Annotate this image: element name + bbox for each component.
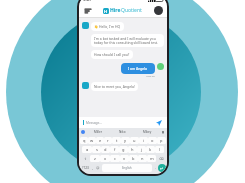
button[interactable]: k — [146, 146, 155, 153]
staticText: I'm a bot tasked and I will evaluate you… — [94, 36, 161, 45]
button[interactable]: b — [129, 155, 138, 162]
staticText: Mikey — [143, 130, 152, 134]
staticText: ↵ — [160, 166, 164, 171]
staticText: H — [104, 9, 108, 14]
staticText: Quotient — [121, 7, 142, 14]
staticText: 👋 Hello, I'm HQ — [94, 24, 121, 29]
staticText: Message... — [86, 121, 102, 125]
staticText: ☺ — [96, 166, 100, 170]
staticText: b — [132, 156, 135, 161]
staticText: u — [133, 138, 136, 143]
button[interactable]: l — [155, 146, 164, 153]
button[interactable]: Google — [81, 130, 85, 134]
button[interactable]: Mikey — [135, 130, 160, 134]
staticText: k — [149, 147, 152, 152]
button[interactable]: z — [90, 155, 100, 162]
staticText: z — [94, 156, 96, 161]
staticText: , — [92, 166, 93, 170]
staticText: How should I call you? — [94, 52, 130, 57]
staticText: s — [96, 147, 98, 152]
button[interactable]: 👋 Hello, I'm HQ — [91, 22, 124, 31]
button[interactable]: j — [137, 146, 146, 153]
button[interactable]: w — [88, 137, 96, 144]
button[interactable]: Niko — [110, 130, 135, 134]
button[interactable]: ☺ — [95, 165, 101, 171]
button[interactable]: t — [112, 137, 121, 144]
staticText: Miller — [94, 130, 102, 134]
staticText: m — [150, 156, 154, 161]
staticText: Hire — [110, 7, 121, 14]
staticText: Niko — [119, 130, 126, 134]
button[interactable]: English — [102, 164, 152, 172]
staticText: w — [90, 138, 94, 143]
staticText: g — [122, 147, 125, 152]
button[interactable]: ⌫ — [156, 155, 166, 162]
button[interactable]: s — [92, 146, 101, 153]
staticText: f — [114, 147, 116, 152]
button[interactable]: p — [157, 137, 166, 144]
button[interactable]: e — [96, 137, 104, 144]
button[interactable]: u — [130, 137, 139, 144]
staticText: . — [155, 166, 156, 170]
staticText: ⌫ — [159, 157, 164, 161]
staticText: ⇧ — [84, 157, 87, 161]
button[interactable]: f — [110, 146, 119, 153]
button[interactable]: I'm a bot tasked and I will evaluate you… — [91, 34, 164, 47]
staticText: c — [114, 156, 116, 161]
staticText: ?123 — [82, 166, 89, 170]
staticText: q — [83, 138, 86, 143]
button[interactable]: n — [138, 155, 147, 162]
button[interactable]: y — [121, 137, 130, 144]
staticText: v — [123, 156, 126, 161]
button[interactable]: Send — [154, 118, 163, 127]
staticText: j — [141, 147, 143, 152]
button[interactable]: d — [101, 146, 110, 153]
button[interactable]: h — [128, 146, 137, 153]
button[interactable]: Menu — [83, 6, 92, 15]
button[interactable]: Enter — [158, 164, 166, 172]
button[interactable]: I am Angela — [121, 63, 155, 74]
button[interactable]: r — [104, 137, 112, 144]
button[interactable]: ?123 — [80, 165, 90, 171]
staticText: x — [104, 156, 107, 161]
staticText: p — [160, 138, 163, 143]
button[interactable]: Profile — [154, 6, 163, 15]
button[interactable]: i — [139, 137, 148, 144]
staticText: r — [107, 138, 109, 143]
button[interactable]: Miller — [85, 130, 110, 134]
button[interactable]: a — [82, 146, 92, 153]
staticText: d — [104, 147, 107, 152]
button[interactable]: c — [110, 155, 120, 162]
staticText: e — [99, 138, 102, 143]
staticText: o — [151, 138, 154, 143]
staticText: English — [122, 166, 132, 170]
staticText: l — [159, 147, 161, 152]
staticText: 12:00 PM — [146, 75, 155, 78]
button[interactable]: g — [119, 146, 128, 153]
staticText: t — [116, 138, 118, 143]
button[interactable]: , — [90, 165, 95, 171]
staticText: i — [143, 138, 145, 143]
button[interactable]: Voice — [160, 130, 165, 135]
button[interactable]: How should I call you? — [91, 50, 133, 59]
staticText: I am Angela — [128, 66, 148, 71]
button[interactable]: Nice to meet you, Angela! — [91, 82, 138, 91]
button[interactable]: q — [80, 137, 88, 144]
button[interactable]: v — [120, 155, 129, 162]
staticText: Nice to meet you, Angela! — [94, 84, 135, 89]
staticText: h — [131, 147, 134, 152]
staticText: y — [124, 138, 127, 143]
staticText: 9:41 — [83, 0, 91, 2]
button[interactable]: o — [148, 137, 157, 144]
staticText: a — [86, 147, 89, 152]
staticText: n — [141, 156, 144, 161]
button[interactable]: m — [147, 155, 156, 162]
button[interactable]: . — [153, 165, 158, 171]
button[interactable]: ⇧ — [80, 155, 90, 162]
button[interactable]: x — [100, 155, 110, 162]
